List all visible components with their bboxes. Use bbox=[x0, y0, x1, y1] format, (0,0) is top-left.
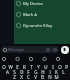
button[interactable]: G bbox=[32, 69, 39, 74]
button[interactable]: R bbox=[21, 64, 28, 69]
button[interactable]: B bbox=[39, 74, 46, 79]
button[interactable]: X bbox=[18, 74, 25, 79]
button[interactable]: J bbox=[46, 69, 53, 74]
button[interactable]: O bbox=[56, 64, 63, 69]
button[interactable]: D bbox=[18, 69, 25, 74]
staticText: M bbox=[54, 74, 59, 79]
staticText: Z bbox=[13, 74, 16, 79]
staticText: Mark A bbox=[23, 12, 37, 18]
button[interactable]: N bbox=[46, 74, 53, 79]
button[interactable]: M bbox=[53, 74, 60, 79]
staticText: My Device bbox=[23, 1, 43, 7]
staticText: S bbox=[13, 69, 16, 74]
staticText: K bbox=[55, 69, 58, 74]
button[interactable]: U bbox=[42, 64, 49, 69]
button[interactable]: Dynamite Kiley bbox=[14, 22, 70, 32]
staticText: N bbox=[48, 74, 52, 79]
staticText: V bbox=[34, 74, 37, 79]
button[interactable]: S bbox=[11, 69, 18, 74]
button[interactable]: L bbox=[60, 69, 67, 74]
button[interactable]: Message bbox=[1, 46, 59, 53]
button[interactable]: V bbox=[32, 74, 39, 79]
button[interactable]: P bbox=[63, 64, 70, 69]
staticText: T bbox=[30, 64, 33, 69]
button[interactable]: H bbox=[39, 69, 46, 74]
button[interactable]: Voice message bbox=[61, 46, 69, 54]
button[interactable]: Q bbox=[0, 64, 7, 69]
staticText: Q bbox=[2, 64, 6, 69]
staticText: R bbox=[23, 64, 26, 69]
staticText: E bbox=[16, 64, 19, 69]
button[interactable]: C bbox=[25, 74, 32, 79]
staticText: O bbox=[58, 64, 62, 69]
staticText: B bbox=[41, 74, 44, 79]
staticText: U bbox=[44, 64, 48, 69]
staticText: J bbox=[49, 69, 51, 74]
staticText: H bbox=[41, 69, 45, 74]
button[interactable]: Y bbox=[35, 64, 42, 69]
staticText: P bbox=[65, 64, 68, 69]
button[interactable]: Mark A bbox=[14, 11, 70, 21]
staticText: Message bbox=[8, 47, 25, 52]
staticText: F bbox=[27, 69, 30, 74]
button[interactable]: My Device bbox=[14, 0, 70, 10]
button[interactable]: Z bbox=[11, 74, 18, 79]
staticText: Dynamite Kiley bbox=[23, 23, 53, 29]
button[interactable]: K bbox=[53, 69, 60, 74]
button[interactable]: W bbox=[7, 64, 14, 69]
button[interactable]: T bbox=[28, 64, 35, 69]
staticText: A bbox=[6, 69, 9, 74]
button[interactable]: A bbox=[4, 69, 11, 74]
staticText: L bbox=[62, 69, 65, 74]
staticText: G bbox=[34, 69, 38, 74]
button[interactable]: F bbox=[25, 69, 32, 74]
button[interactable]: E bbox=[14, 64, 21, 69]
staticText: D bbox=[20, 69, 24, 74]
staticText: C bbox=[27, 74, 30, 79]
button[interactable]: I bbox=[49, 64, 56, 69]
staticText: I bbox=[52, 64, 54, 69]
staticText: X bbox=[20, 74, 23, 79]
staticText: W bbox=[8, 64, 13, 69]
staticText: Y bbox=[37, 64, 40, 69]
